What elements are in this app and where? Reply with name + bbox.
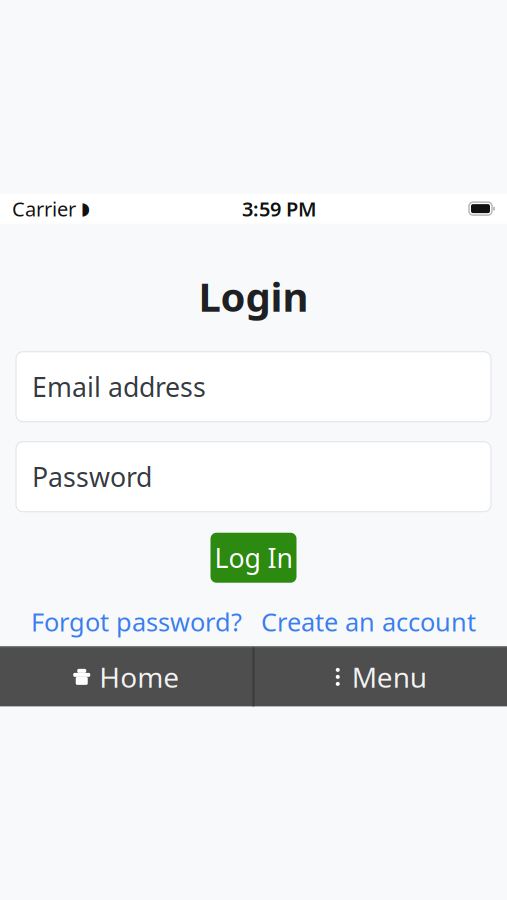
staticText: Forgot password? xyxy=(31,605,242,638)
staticText: Menu xyxy=(352,658,427,695)
staticText: Log In xyxy=(214,540,292,575)
staticText: Login xyxy=(198,270,308,323)
staticText: Carrier xyxy=(12,195,76,222)
button[interactable]: Home xyxy=(0,647,252,706)
staticText: Home xyxy=(99,658,179,695)
staticText: 3:59 PM xyxy=(242,195,317,222)
staticText: Password xyxy=(32,459,152,494)
button[interactable]: Forgot password? xyxy=(31,605,242,638)
staticText: ◗ xyxy=(81,199,90,218)
button[interactable]: Create an account xyxy=(261,605,476,638)
button[interactable]: Menu xyxy=(254,647,507,706)
staticText: Create an account xyxy=(261,605,476,638)
button[interactable]: Log In xyxy=(210,533,296,583)
staticText: Email address xyxy=(32,369,206,404)
